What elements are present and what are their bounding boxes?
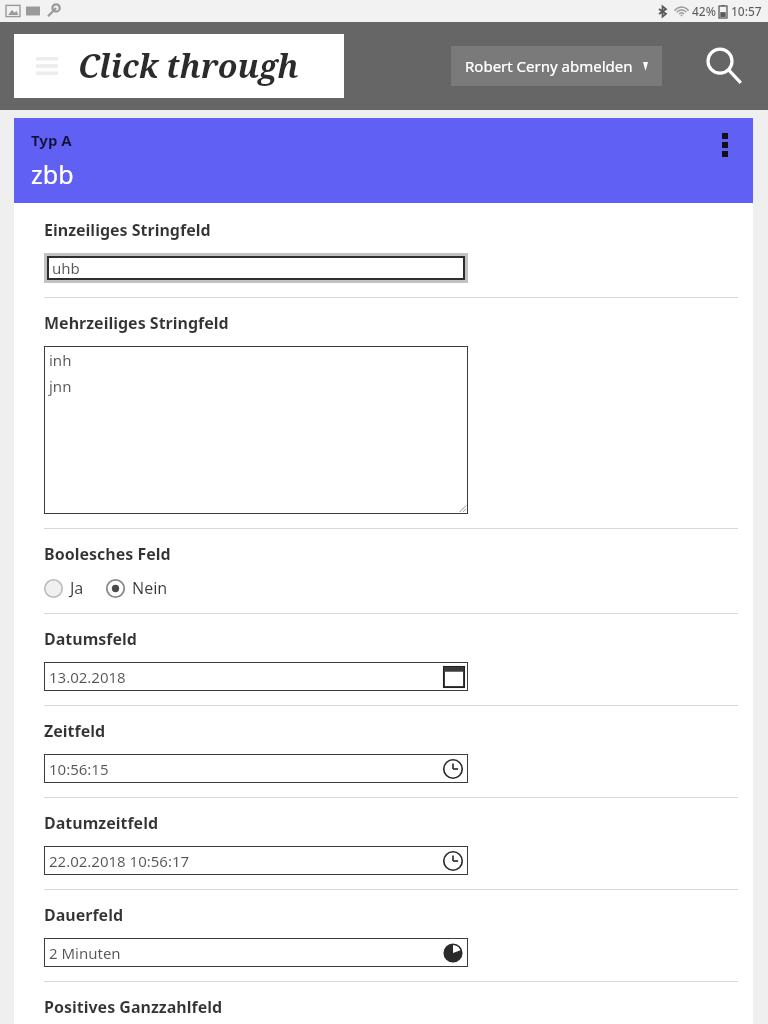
staticText: Boolesches Feld: [44, 543, 171, 565]
staticText: zbb: [31, 157, 74, 191]
button[interactable]: More options: [711, 128, 739, 162]
staticText: uhb: [52, 258, 80, 278]
button[interactable]: uhb: [47, 256, 465, 280]
staticText: Mehrzeiliges Stringfeld: [44, 312, 229, 334]
staticText: 10:56:15: [49, 759, 109, 779]
staticText: jnn: [49, 376, 72, 396]
button[interactable]: Search: [700, 42, 748, 90]
staticText: Robert Cerny abmelden: [465, 56, 633, 76]
staticText: 13.02.2018: [49, 667, 126, 687]
staticText: Einzeiliges Stringfeld: [44, 219, 211, 241]
button[interactable]: inh: [44, 346, 468, 514]
staticText: Dauerfeld: [44, 904, 124, 926]
button[interactable]: 10:56:15: [44, 754, 468, 783]
staticText: Nein: [132, 577, 168, 599]
button[interactable]: 13.02.2018: [44, 662, 468, 691]
staticText: 42%: [692, 3, 716, 19]
staticText: Ja: [70, 577, 84, 599]
staticText: 10:57: [731, 3, 762, 19]
button[interactable]: Click through: [14, 34, 344, 98]
button[interactable]: 2 Minuten: [44, 938, 468, 967]
staticText: Datumzeitfeld: [44, 812, 159, 834]
staticText: Typ A: [31, 130, 72, 150]
staticText: 2 Minuten: [49, 943, 121, 963]
staticText: Positives Ganzzahlfeld: [44, 996, 223, 1018]
staticText: Zeitfeld: [44, 720, 106, 742]
button[interactable]: Nein: [106, 577, 168, 599]
staticText: Click through: [78, 44, 299, 88]
button[interactable]: Robert Cerny abmelden: [451, 46, 662, 86]
button[interactable]: Ja: [44, 577, 84, 599]
staticText: Datumsfeld: [44, 628, 137, 650]
button[interactable]: 22.02.2018 10:56:17: [44, 846, 468, 875]
staticText: 22.02.2018 10:56:17: [49, 851, 190, 871]
staticText: inh: [49, 350, 72, 370]
